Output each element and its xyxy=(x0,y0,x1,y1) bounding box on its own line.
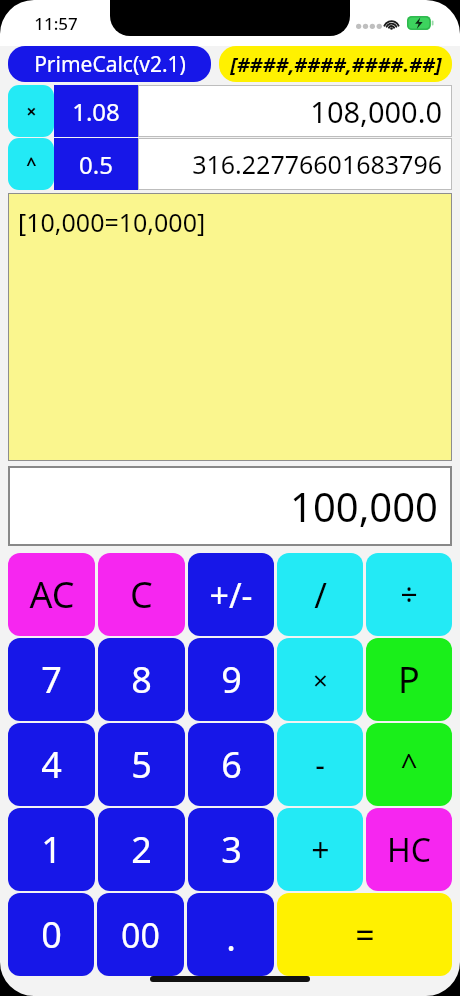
staticText: / xyxy=(314,572,327,618)
button[interactable]: 108,000.0 xyxy=(138,85,452,137)
button[interactable]: 3 xyxy=(188,808,274,891)
button[interactable]: + xyxy=(277,808,363,891)
staticText: 7 xyxy=(41,655,62,704)
staticText: + xyxy=(311,828,330,872)
staticText: 4 xyxy=(41,740,62,789)
staticText: 3 xyxy=(221,825,242,874)
button[interactable]: 0.5 xyxy=(54,138,138,190)
staticText: 11:57 xyxy=(34,12,78,35)
button[interactable]: HC xyxy=(366,808,452,891)
staticText: 100,000 xyxy=(290,479,438,533)
button[interactable]: [10,000=10,000] xyxy=(8,193,452,461)
button[interactable]: P xyxy=(366,638,452,721)
button[interactable]: × xyxy=(8,85,54,137)
staticText: P xyxy=(398,655,420,704)
staticText: 0 xyxy=(41,910,62,959)
button[interactable]: ^ xyxy=(8,138,54,190)
button[interactable]: 9 xyxy=(188,638,274,721)
staticText: PrimeCalc(v2.1) xyxy=(34,50,186,79)
button[interactable]: C xyxy=(98,553,185,636)
staticText: [10,000=10,000] xyxy=(18,205,206,239)
staticText: 0.5 xyxy=(79,148,113,181)
staticText: 8 xyxy=(131,655,152,704)
staticText: × xyxy=(313,662,328,697)
staticText: 2 xyxy=(131,825,152,874)
button[interactable]: [####,####,####.##] xyxy=(219,46,452,82)
button[interactable]: 1.08 xyxy=(54,85,138,137)
staticText: 00 xyxy=(121,912,160,958)
staticText: = xyxy=(355,912,375,958)
button[interactable]: = xyxy=(277,893,452,976)
button[interactable]: 4 xyxy=(8,723,95,806)
button[interactable]: 1 xyxy=(8,808,95,891)
staticText: 108,000.0 xyxy=(310,92,442,131)
staticText: 5 xyxy=(131,740,152,789)
button[interactable]: × xyxy=(277,638,363,721)
staticText: ^ xyxy=(26,152,37,177)
button[interactable]: 8 xyxy=(98,638,185,721)
staticText: [####,####,####.##] xyxy=(230,51,442,78)
button[interactable]: - xyxy=(277,723,363,806)
staticText: AC xyxy=(29,570,75,619)
button[interactable]: . xyxy=(187,893,274,976)
staticText: - xyxy=(315,744,325,785)
button[interactable]: 0 xyxy=(8,893,94,976)
staticText: 9 xyxy=(221,655,242,704)
button[interactable]: 2 xyxy=(98,808,185,891)
staticText: HC xyxy=(387,828,431,872)
staticText: ÷ xyxy=(400,574,418,615)
button[interactable]: ÷ xyxy=(366,553,452,636)
button[interactable]: ^ xyxy=(366,723,452,806)
button[interactable]: 5 xyxy=(98,723,185,806)
button[interactable]: 100,000 xyxy=(8,466,452,546)
button[interactable]: 316.22776601683796 xyxy=(138,138,452,190)
button[interactable]: 6 xyxy=(188,723,274,806)
staticText: 1.08 xyxy=(72,95,120,128)
button[interactable]: +/- xyxy=(188,553,274,636)
staticText: 316.22776601683796 xyxy=(192,147,442,181)
staticText: . xyxy=(226,913,236,962)
staticText: +/- xyxy=(209,572,253,618)
staticText: ^ xyxy=(400,744,418,785)
button[interactable]: 00 xyxy=(97,893,184,976)
staticText: C xyxy=(130,570,153,619)
staticText: 1 xyxy=(41,825,62,874)
button[interactable]: 7 xyxy=(8,638,95,721)
button[interactable]: PrimeCalc(v2.1) xyxy=(8,46,211,82)
button[interactable]: AC xyxy=(8,553,95,636)
staticText: 6 xyxy=(221,740,242,789)
button[interactable]: / xyxy=(277,553,363,636)
staticText: × xyxy=(26,99,37,124)
